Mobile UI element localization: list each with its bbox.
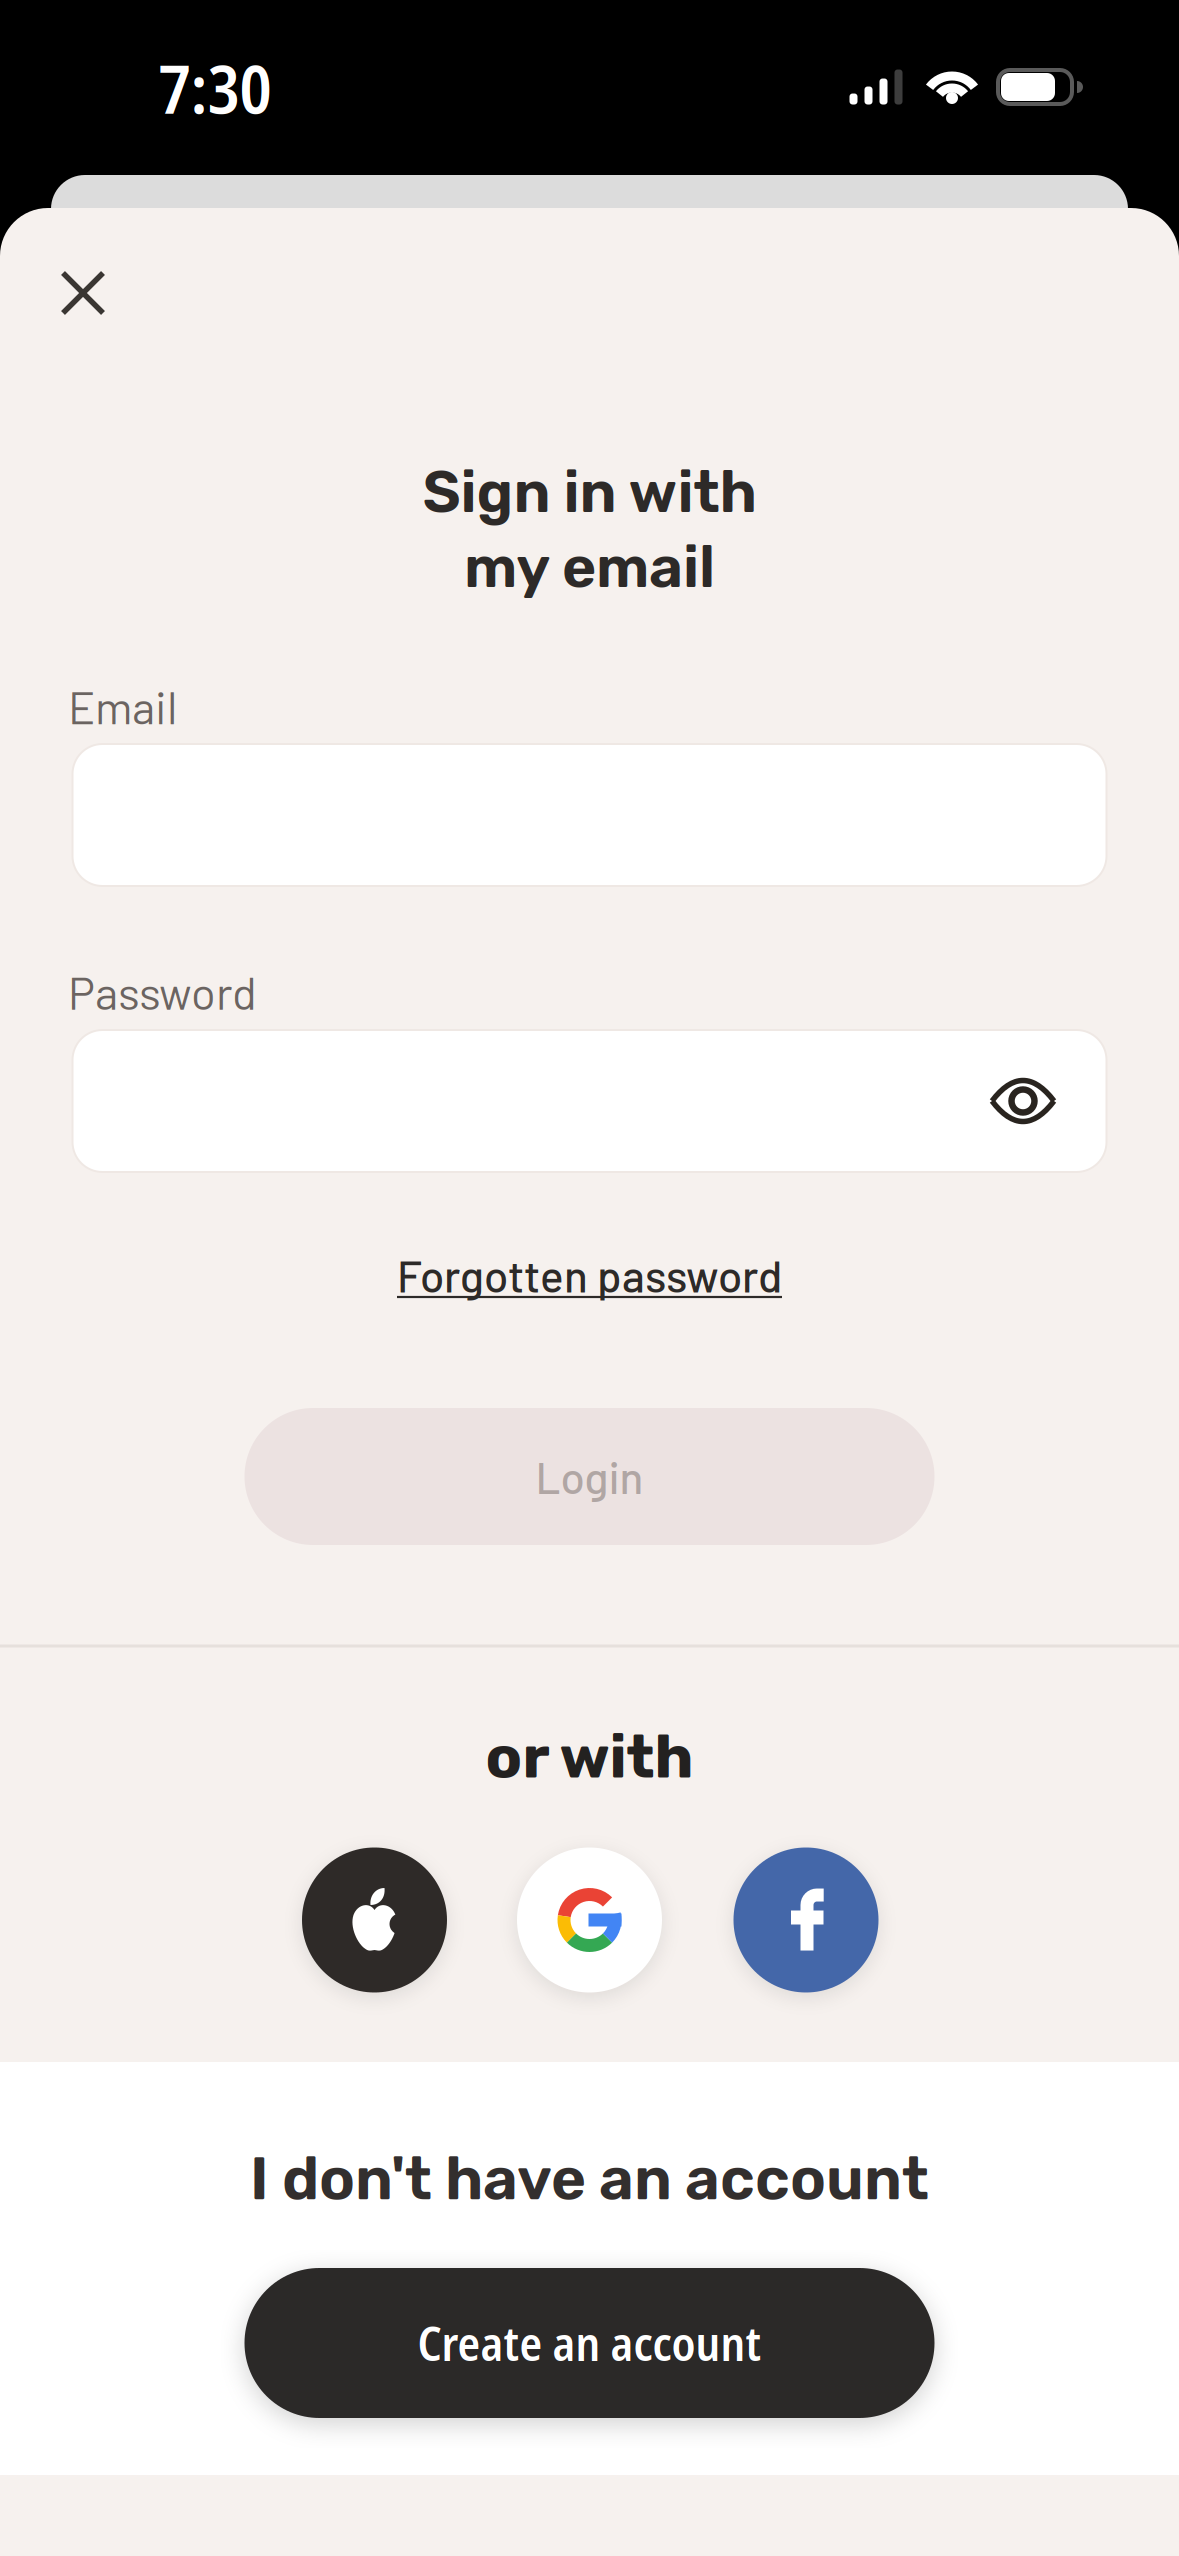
staticText: my email: [464, 532, 715, 602]
staticText: Sign in with: [422, 457, 756, 527]
staticText: I don't have an account: [250, 2143, 929, 2214]
staticText: Forgotten password: [397, 1249, 782, 1301]
staticText: Login: [535, 1450, 643, 1503]
button[interactable]: Sign in with Facebook: [733, 1847, 878, 1992]
staticText: Password: [68, 964, 257, 1019]
button[interactable]: Create an account: [244, 2268, 934, 2418]
button[interactable]: Sign in with Apple: [302, 1847, 447, 1992]
button[interactable]: Close: [51, 261, 115, 325]
button[interactable]: Forgotten password: [397, 1249, 782, 1301]
staticText: or with: [485, 1721, 693, 1793]
staticText: Create an account: [417, 2311, 761, 2375]
staticText: 7:30: [158, 43, 271, 133]
staticText: Email: [68, 679, 177, 733]
button[interactable]: Login: [244, 1408, 934, 1545]
button[interactable]: Show password: [978, 1056, 1068, 1146]
button[interactable]: Sign in with Google: [517, 1847, 662, 1992]
